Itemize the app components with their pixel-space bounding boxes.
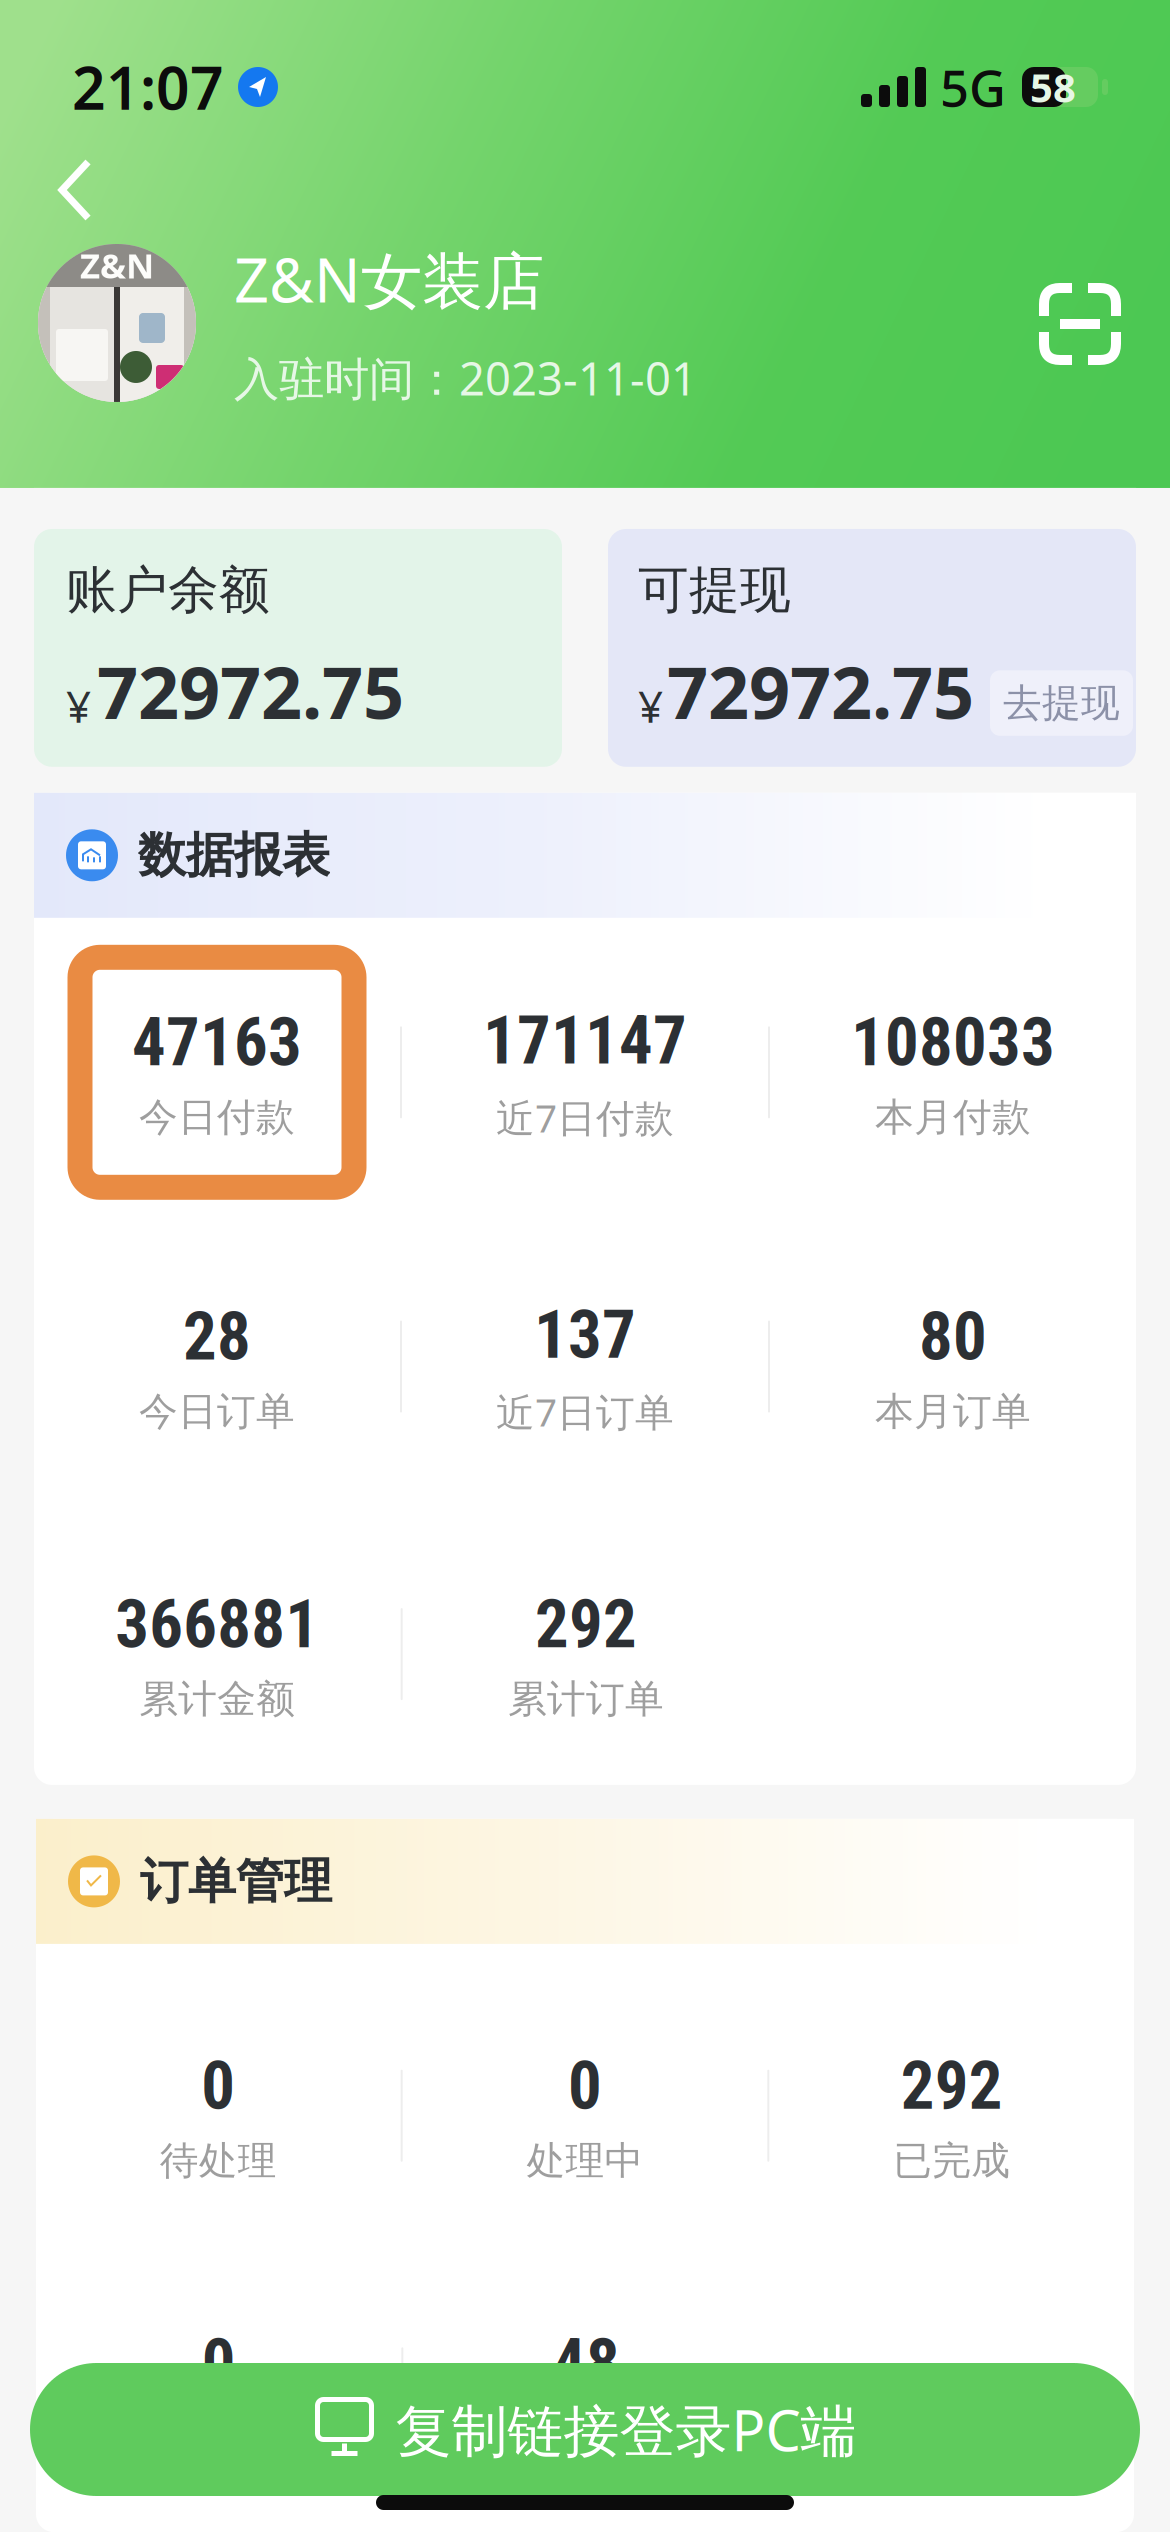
staticText: 累计订单 — [508, 1675, 664, 1723]
staticText: 复制链接登录PC端 — [395, 2392, 856, 2467]
button[interactable]: Back — [44, 138, 116, 224]
staticText: 366881 — [115, 1585, 319, 1663]
staticText: 数据报表 — [138, 826, 330, 885]
staticText: ¥ — [66, 676, 91, 735]
staticText: 0 — [568, 2047, 602, 2125]
staticText: 58 — [1030, 60, 1076, 113]
staticText: 订单管理 — [140, 1852, 332, 1911]
staticText: 21:07 — [72, 48, 224, 126]
staticText: 47163 — [132, 1003, 302, 1082]
staticText: 48 — [552, 2324, 620, 2403]
staticText: 今日付款 — [139, 1094, 295, 1141]
button[interactable]: Scan QR code — [1034, 278, 1124, 368]
staticText: 本月付款 — [875, 1094, 1031, 1141]
staticText: 292 — [901, 2047, 1003, 2125]
staticText: 72972.75 — [667, 643, 974, 739]
staticText: Z&N女装店 — [234, 238, 544, 320]
button[interactable]: 复制链接登录PC端 — [30, 2363, 1140, 2496]
staticText: 已完成 — [893, 2137, 1010, 2184]
staticText: 去提现 — [1003, 679, 1120, 727]
staticText: 0 — [202, 2324, 236, 2403]
staticText: 账户余额 — [66, 559, 270, 621]
staticText: 处理中 — [526, 2137, 643, 2184]
staticText: 待处理 — [160, 2137, 277, 2184]
staticText: 今日订单 — [139, 1388, 295, 1435]
staticText: 80 — [919, 1298, 987, 1376]
staticText: 5G — [940, 53, 1006, 121]
staticText: 入驻时间：2023-11-01 — [234, 348, 697, 408]
staticText: ¥ — [638, 676, 663, 735]
staticText: 本月订单 — [875, 1388, 1031, 1435]
staticText: 近7日付款 — [496, 1092, 674, 1143]
staticText: 28 — [183, 1298, 251, 1376]
staticText: 171147 — [483, 1002, 687, 1080]
staticText: 可提现 — [638, 559, 791, 621]
staticText: 137 — [534, 1296, 636, 1374]
staticText: 已付款 — [527, 2415, 644, 2462]
staticText: 72972.75 — [97, 643, 404, 739]
staticText: 292 — [535, 1585, 637, 1663]
staticText: Z&N — [80, 242, 154, 288]
staticText: 0 — [201, 2047, 235, 2125]
staticText: 近7日订单 — [496, 1386, 674, 1437]
button[interactable]: 去提现 — [990, 670, 1133, 736]
staticText: 累计金额 — [139, 1675, 295, 1723]
staticText: 108033 — [851, 1003, 1055, 1082]
